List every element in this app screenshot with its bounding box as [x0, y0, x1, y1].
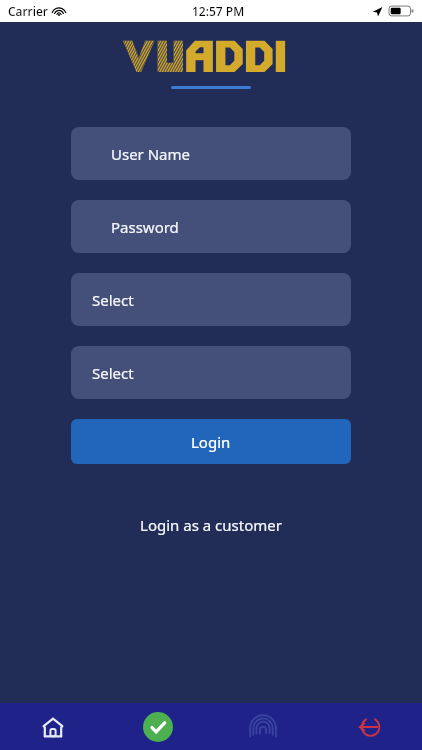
staticText: Carrier [8, 3, 48, 19]
button[interactable]: Confirm [105, 703, 210, 750]
staticText: Login [191, 432, 231, 452]
button[interactable]: User Name [71, 127, 351, 180]
button[interactable]: Fingerprint login [210, 703, 316, 750]
button[interactable]: Password [71, 200, 351, 253]
button[interactable]: Login as a customer [128, 509, 294, 541]
staticText: Login as a customer [140, 515, 282, 535]
staticText: Select [92, 363, 134, 383]
button[interactable]: Select [71, 273, 351, 326]
button[interactable]: Home [0, 703, 105, 750]
staticText: User Name [111, 144, 191, 164]
button[interactable]: Select [71, 346, 351, 399]
staticText: Select [92, 290, 134, 310]
staticText: Password [111, 217, 179, 237]
staticText: 12:57 PM [192, 3, 245, 19]
button[interactable]: Login [71, 419, 351, 464]
button[interactable]: Logout [316, 703, 422, 750]
